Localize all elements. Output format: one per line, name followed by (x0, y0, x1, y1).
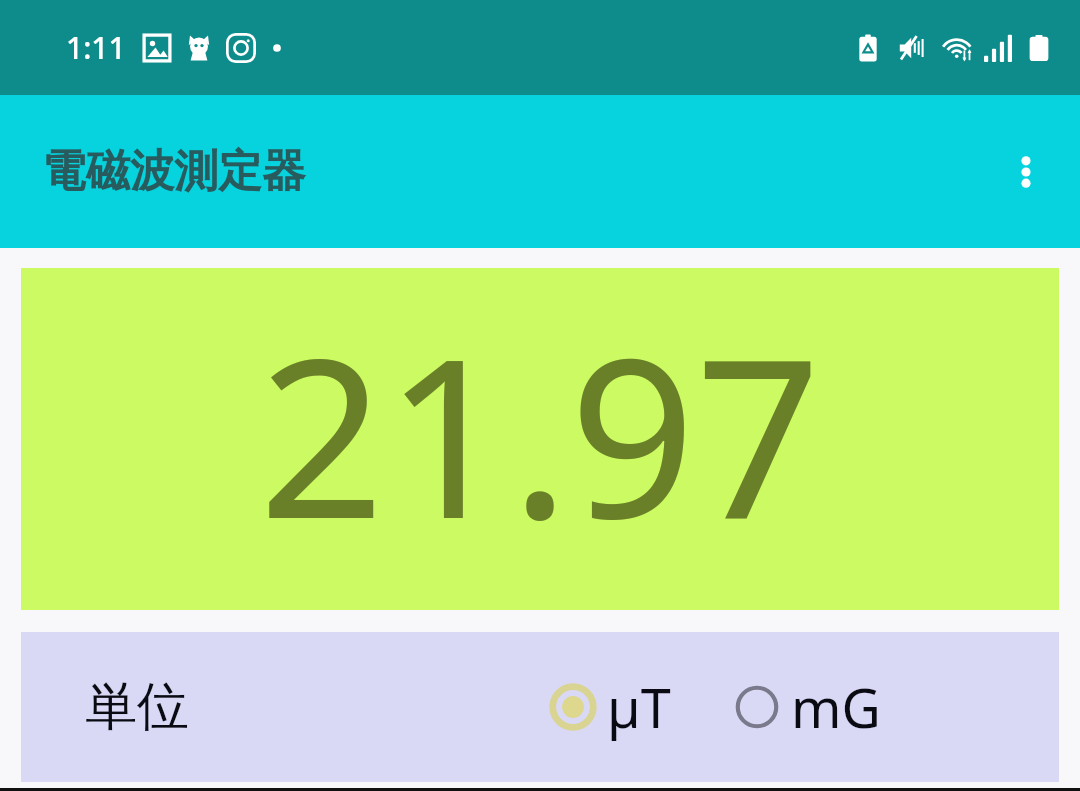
button[interactable]: 21.97 (21, 268, 1059, 610)
button[interactable]: More options (990, 136, 1062, 208)
staticText: 21.97 (21, 283, 1059, 583)
staticText: µT (607, 670, 671, 744)
button[interactable]: µT (541, 664, 677, 750)
button[interactable]: mG (725, 664, 887, 750)
staticText: 電磁波測定器 (42, 144, 306, 199)
staticText: mG (791, 670, 881, 744)
staticText: 単位 (85, 674, 189, 740)
staticText: 1:11 (66, 27, 126, 68)
